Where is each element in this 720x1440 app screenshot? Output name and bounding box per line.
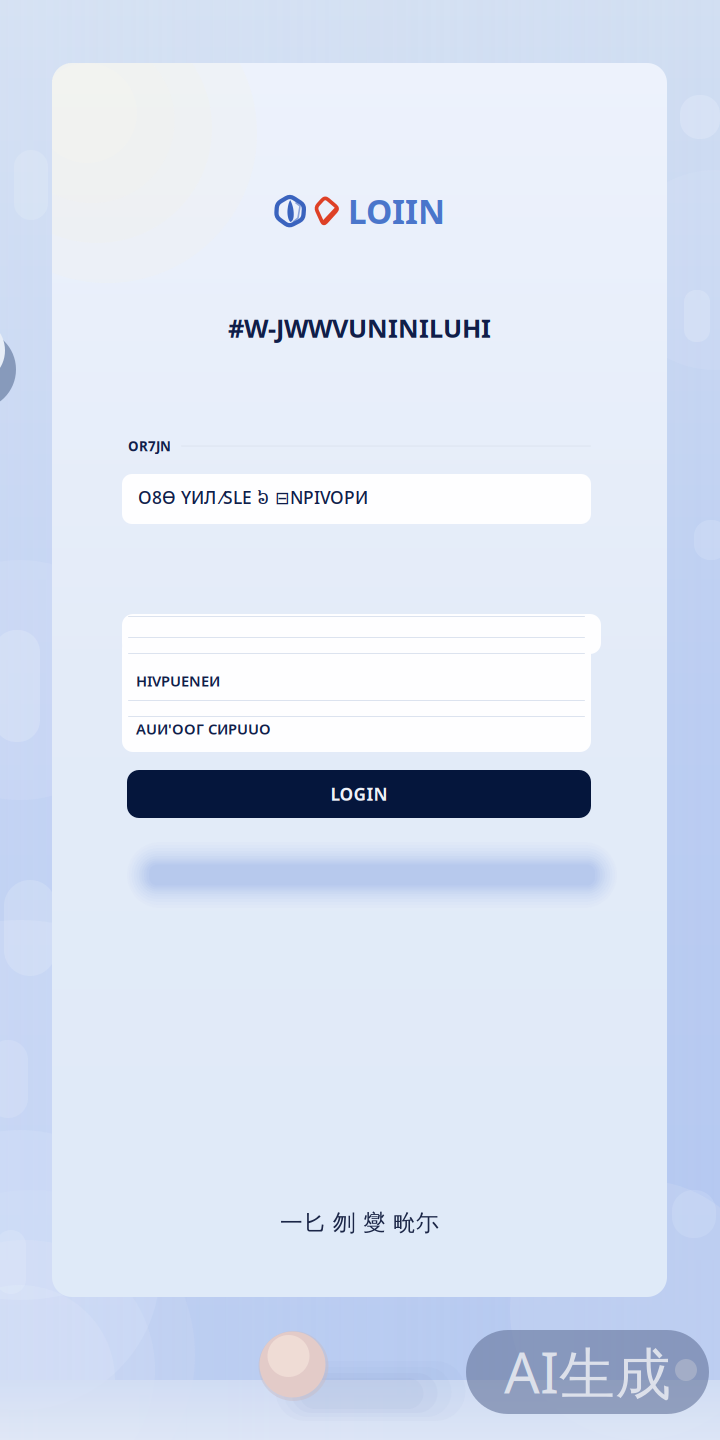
- staticText: LOIIN: [348, 189, 445, 233]
- staticText: #W-JWWVUNINILUHI: [228, 311, 491, 345]
- staticText: O8Ө YИЛ ⁄SLE ៦ ⊟NPIVOPИ: [138, 486, 368, 512]
- staticText: OR7JN: [128, 437, 171, 455]
- button[interactable]: LOGIN: [127, 770, 591, 818]
- staticText: 一匕 刎 燮 㽙尓: [280, 1209, 439, 1237]
- staticText: AI生成: [504, 1335, 671, 1409]
- staticText: AUИ'OOГ CИPUUO: [136, 719, 271, 738]
- staticText: HIVPUENEИ: [136, 671, 220, 690]
- staticText: LOGIN: [330, 782, 387, 805]
